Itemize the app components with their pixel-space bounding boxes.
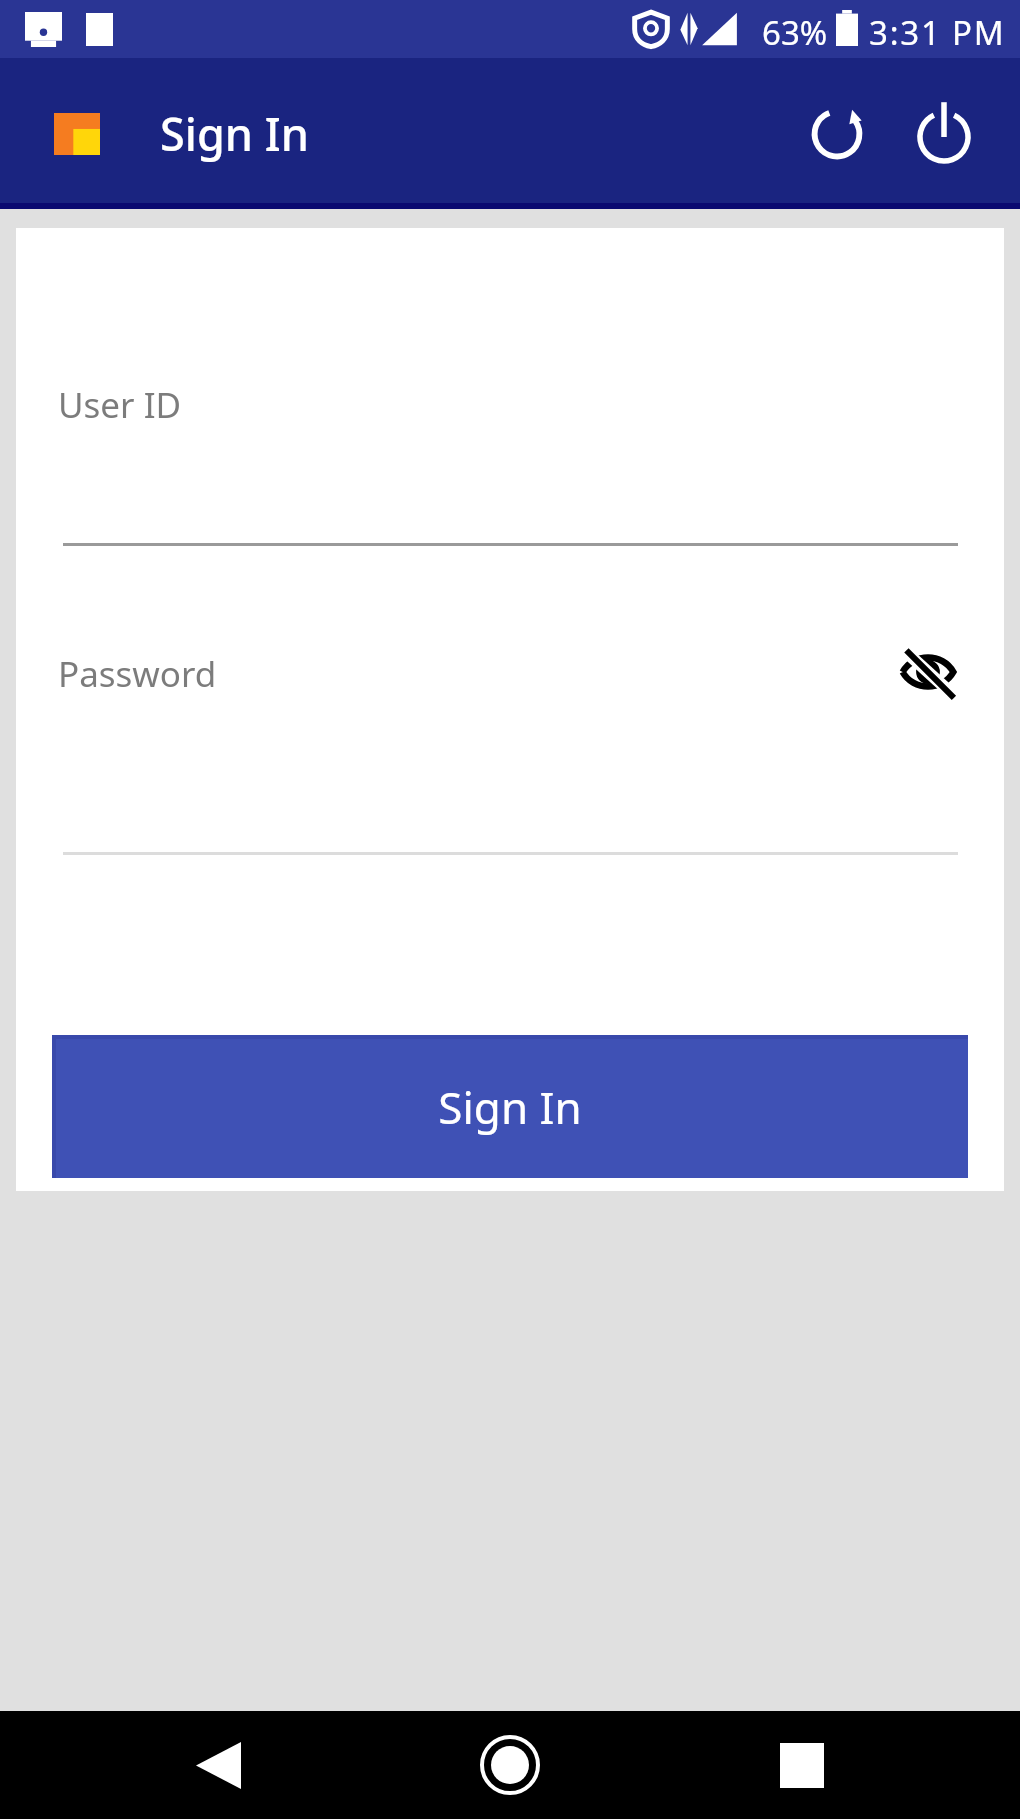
button[interactable]: Back [163,1711,273,1819]
staticText: Sign In [160,103,309,164]
button[interactable]: Toggle password visibility [896,640,960,704]
staticText: Password [58,650,217,698]
button[interactable]: Power [890,80,997,187]
button[interactable]: User ID [63,368,958,546]
staticText: 3:31 PM [869,10,1006,55]
button[interactable]: Recents [747,1711,857,1819]
button[interactable]: Sign In [52,1035,968,1178]
button[interactable]: Refresh [783,80,890,187]
staticText: User ID [58,381,182,429]
button[interactable]: Home [455,1711,565,1819]
staticText: 63% [762,10,828,55]
button[interactable]: Password [63,637,958,855]
staticText: Sign In [438,1077,582,1137]
